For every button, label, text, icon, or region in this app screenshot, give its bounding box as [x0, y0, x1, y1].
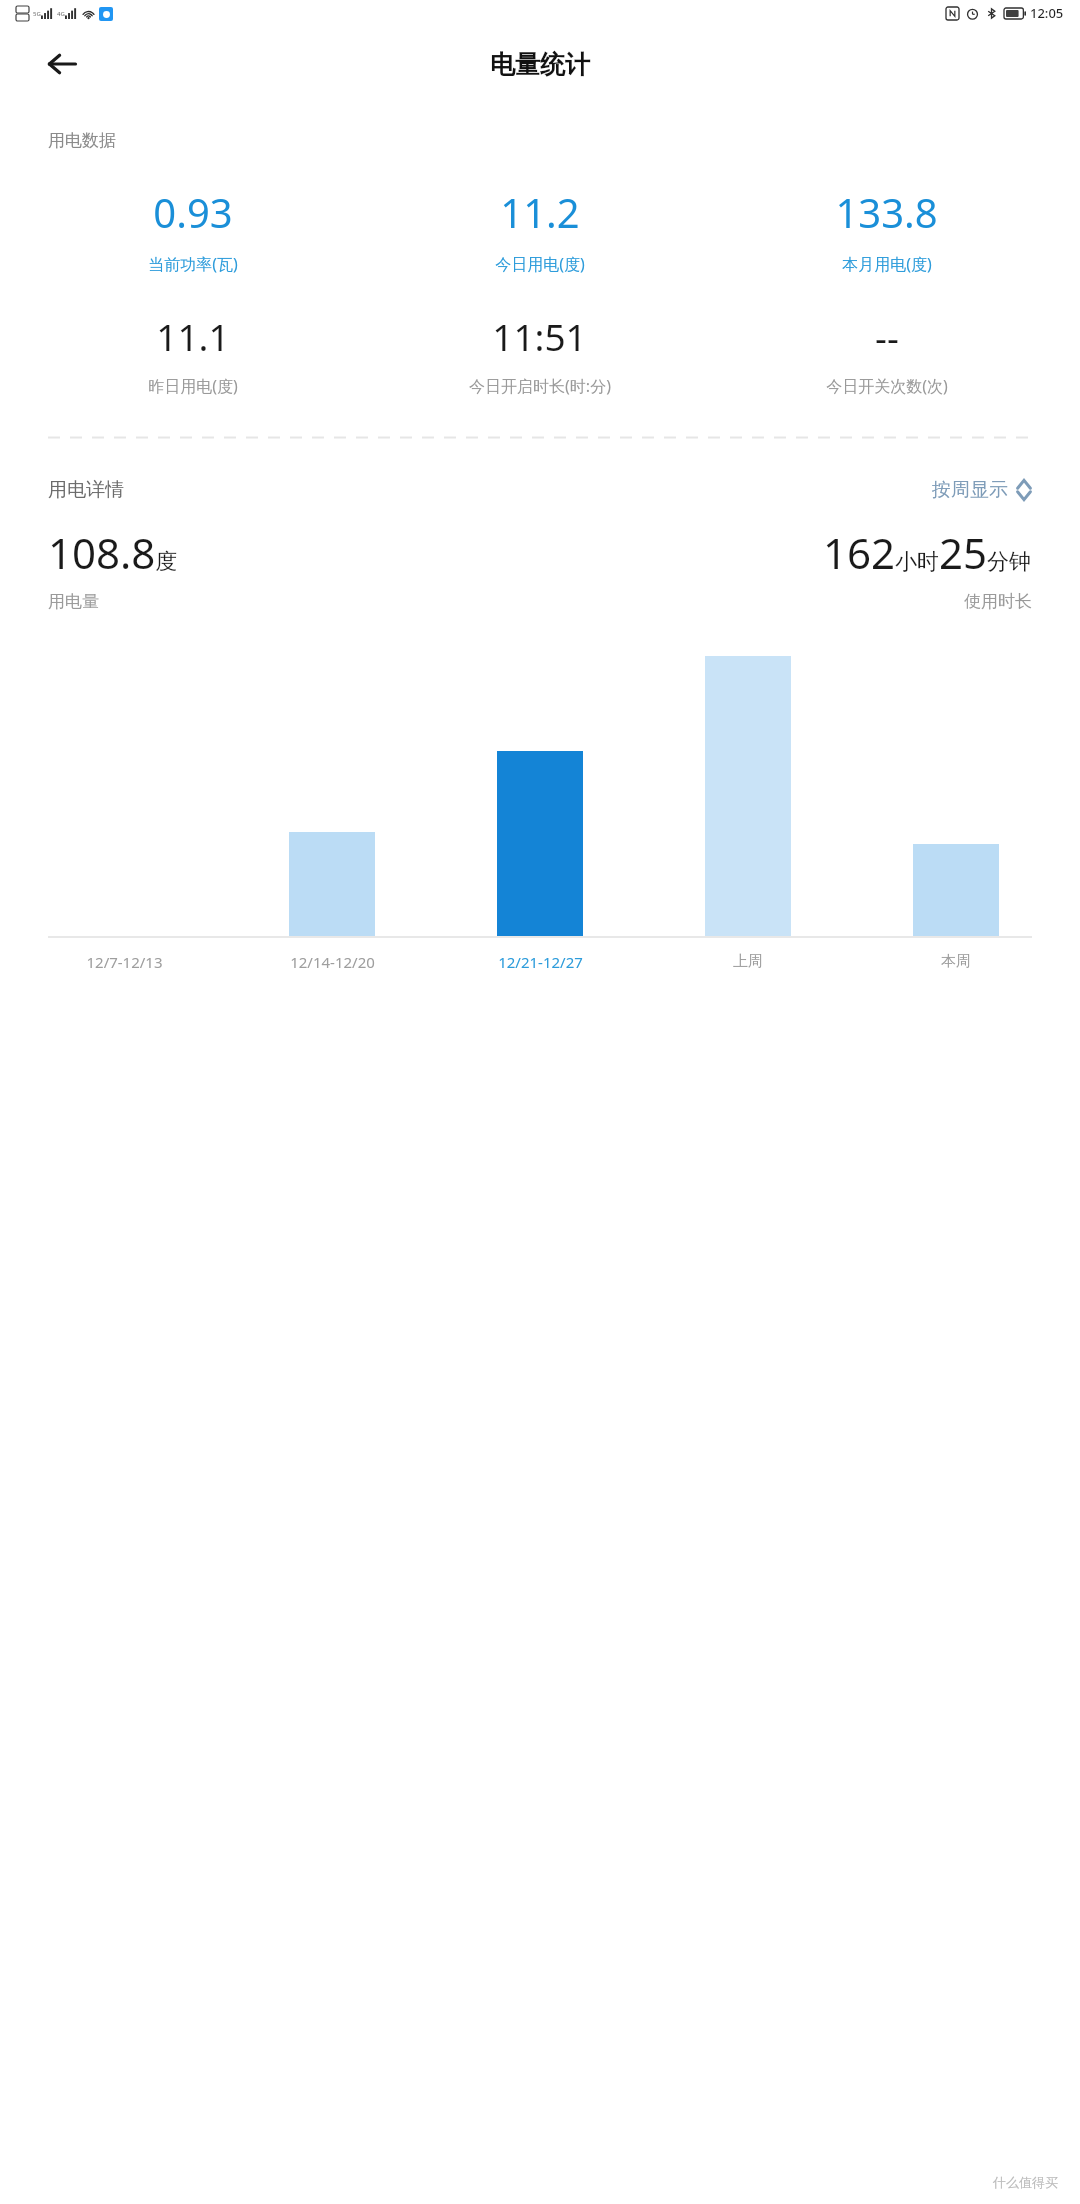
staticText: 按周显示: [932, 478, 1008, 502]
staticText: 108.8度: [48, 524, 178, 581]
staticText: 电量统计: [490, 49, 590, 80]
staticText: 什么值得买: [993, 2174, 1058, 2190]
staticText: 上周: [733, 952, 763, 971]
button[interactable]: Back: [36, 38, 88, 90]
button[interactable]: --: [713, 311, 1060, 397]
staticText: 4G: [57, 10, 65, 18]
staticText: 11.1: [156, 311, 230, 361]
staticText: 12/14-12/20: [290, 952, 375, 972]
staticText: 5G: [33, 10, 41, 18]
staticText: 当前功率(瓦): [148, 253, 238, 275]
staticText: 12/21-12/27: [498, 952, 583, 972]
staticText: 今日开启时长(时:分): [469, 375, 611, 397]
staticText: 133.8: [835, 185, 938, 239]
staticText: 11:51: [492, 311, 587, 361]
staticText: 今日开关次数(次): [826, 375, 948, 397]
staticText: 今日用电(度): [495, 253, 585, 275]
button[interactable]: [436, 656, 644, 936]
button[interactable]: 按周显示: [932, 478, 1032, 502]
staticText: 用电量: [48, 591, 99, 612]
staticText: 11.2: [500, 185, 580, 239]
button[interactable]: [228, 656, 436, 936]
staticText: 12:05: [1030, 4, 1064, 22]
staticText: 昨日用电(度): [148, 375, 238, 397]
button[interactable]: 用电详情: [48, 478, 124, 502]
staticText: 用电数据: [48, 130, 116, 151]
button[interactable]: 133.8: [713, 185, 1060, 275]
button[interactable]: 11.2: [366, 185, 713, 275]
staticText: 12/7-12/13: [86, 952, 163, 972]
button[interactable]: 11:51: [366, 311, 713, 397]
button[interactable]: [852, 656, 1060, 936]
button[interactable]: 0.93: [20, 185, 366, 275]
staticText: 0.93: [153, 185, 233, 239]
staticText: 使用时长: [964, 591, 1032, 612]
button[interactable]: [644, 656, 852, 936]
staticText: 本周: [941, 952, 971, 971]
button[interactable]: 11.1: [20, 311, 366, 397]
staticText: 162小时25分钟: [823, 524, 1032, 581]
staticText: 本月用电(度): [842, 253, 932, 275]
staticText: --: [875, 311, 899, 361]
